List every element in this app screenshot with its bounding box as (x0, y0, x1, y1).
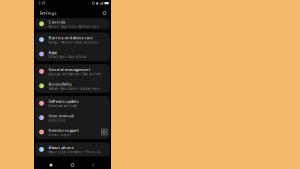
button[interactable]: Apps (35, 47, 110, 61)
staticText: Accessibility (48, 81, 71, 86)
staticText: Settings (40, 10, 57, 16)
staticText: 2:28 (39, 1, 46, 5)
staticText: Storage • Memory • Device protection (48, 41, 98, 44)
staticText: Battery and device care (48, 35, 92, 40)
button[interactable]: Recents (46, 161, 55, 169)
button[interactable]: Battery and device care (35, 32, 110, 47)
button[interactable]: Controls (35, 18, 110, 29)
staticText: Controls (48, 19, 65, 24)
staticText: User manual (48, 113, 73, 118)
staticText: Default apps • App settings (48, 55, 86, 58)
staticText: Motion • App tools • Multiple users (48, 25, 98, 28)
button[interactable]: Back (89, 161, 98, 169)
button[interactable]: Remote support (35, 125, 110, 139)
staticText: Remote support (48, 127, 79, 133)
staticText: TalkBack • Mono audio • Assistant menu (48, 87, 100, 90)
staticText: Download and install (48, 104, 77, 108)
button[interactable]: About phone (35, 142, 110, 157)
staticText: Remote support (48, 133, 71, 136)
button[interactable]: Software update (35, 96, 110, 110)
staticText: Useful hints (48, 119, 65, 122)
button[interactable]: Search (101, 9, 108, 16)
staticText: About phone (48, 145, 73, 150)
button[interactable]: Home (68, 161, 77, 169)
staticText: Software update (48, 99, 78, 104)
button[interactable]: Accessibility (35, 79, 110, 93)
staticText: Status • Legal information • Phone name (48, 150, 103, 154)
staticText: General management (48, 67, 90, 72)
staticText: Apps (48, 49, 57, 55)
button[interactable]: General management (35, 64, 110, 79)
staticText: Language and keyboard • Date and time (48, 72, 101, 76)
button[interactable]: User manual (35, 110, 110, 125)
